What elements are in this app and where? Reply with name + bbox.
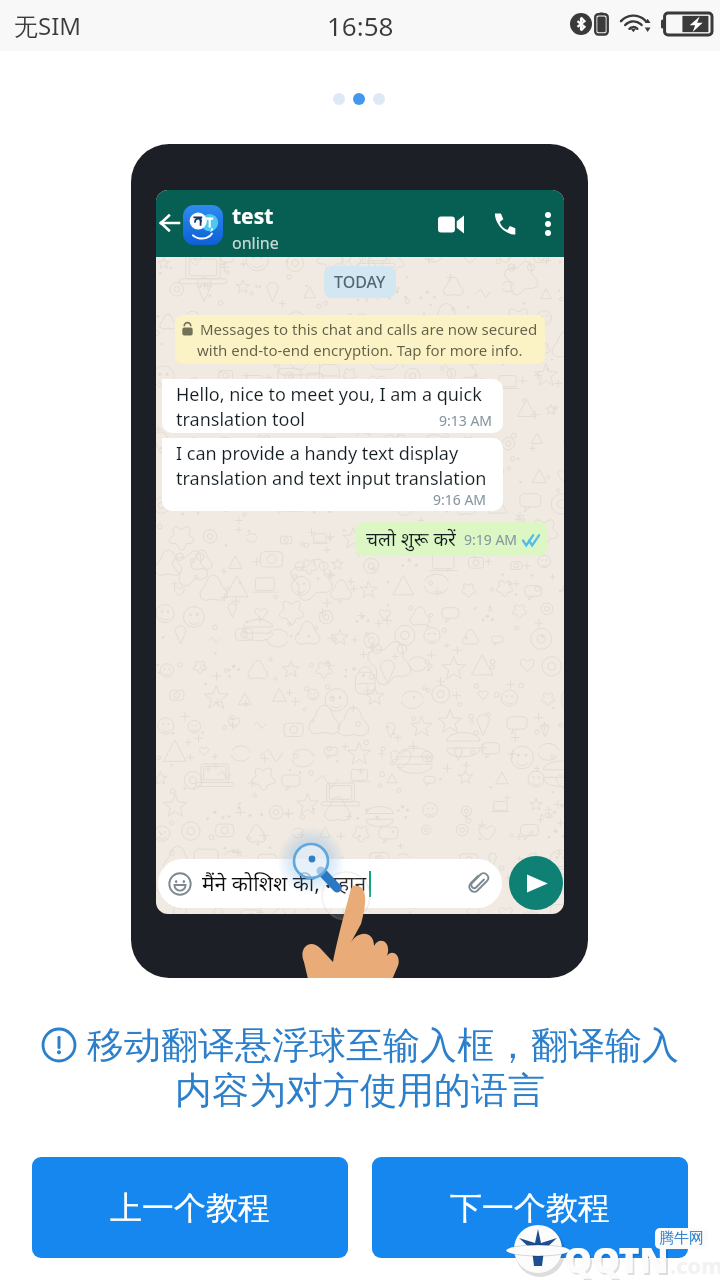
other: Info	[41, 1027, 77, 1063]
button[interactable]: मैंने कोशिश की, महान	[158, 859, 502, 908]
staticText: 无SIM	[14, 9, 82, 42]
staticText: Hello, nice to meet you, I am a quick	[176, 382, 482, 407]
staticText: translation tool	[176, 407, 305, 432]
staticText: translation and text input translation	[176, 466, 487, 491]
button[interactable]: I can provide a handy text display	[176, 441, 493, 510]
staticText: QQTN	[566, 1238, 671, 1280]
staticText: test	[232, 202, 274, 231]
button[interactable]: Send	[509, 856, 563, 910]
staticText: TODAY	[334, 271, 386, 293]
staticText: 9:16 AM	[433, 490, 487, 509]
staticText: .com	[670, 1250, 720, 1280]
staticText: 9:19 AM	[464, 530, 518, 549]
staticText: चलो शुरू करें	[366, 526, 456, 552]
staticText: 16:58	[327, 8, 394, 43]
button[interactable]: Voice call	[493, 212, 517, 236]
staticText: 内容为对方使用的语言	[175, 1067, 545, 1114]
staticText: QQTN	[564, 1236, 669, 1280]
button[interactable]: 下一个教程	[372, 1157, 688, 1258]
button[interactable]: Video call	[438, 215, 464, 234]
button[interactable]: More options	[545, 212, 551, 236]
button[interactable]: चलो शुरू करें	[366, 526, 541, 552]
staticText: I can provide a handy text display	[176, 441, 459, 466]
button[interactable]: Hello, nice to meet you, I am a quick	[176, 382, 493, 432]
staticText: मैंने कोशिश की, महान	[202, 869, 367, 898]
staticText: 腾牛网	[659, 1229, 704, 1248]
staticText: 9:13 AM	[439, 411, 493, 430]
staticText: with end-to-end encryption. Tap for more…	[197, 340, 523, 360]
staticText: 移动翻译悬浮球至输入框，翻译输入	[87, 1022, 679, 1069]
button[interactable]: Back	[157, 206, 183, 240]
staticText: 上一个教程	[110, 1188, 270, 1228]
button[interactable]: 上一个教程	[32, 1157, 348, 1258]
staticText: 下一个教程	[450, 1188, 610, 1228]
staticText: online	[232, 232, 279, 254]
staticText: Messages to this chat and calls are now …	[200, 319, 538, 339]
other: Attach	[466, 871, 491, 896]
